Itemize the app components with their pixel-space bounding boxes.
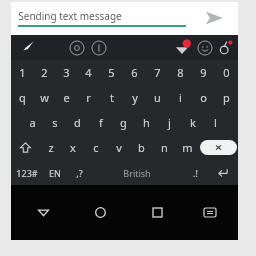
- staticText: British: [123, 167, 151, 179]
- button[interactable]: m: [176, 135, 199, 160]
- staticText: q: [19, 90, 26, 105]
- staticText: g: [120, 115, 127, 130]
- staticText: y: [132, 90, 138, 105]
- staticText: x: [70, 140, 76, 155]
- button[interactable]: r: [77, 85, 100, 110]
- staticText: 9: [200, 65, 207, 80]
- button[interactable]: x: [62, 135, 84, 160]
- button[interactable]: h: [135, 110, 158, 135]
- button[interactable]: c: [84, 135, 107, 160]
- button[interactable]: 8: [169, 60, 192, 85]
- button[interactable]: q: [11, 85, 33, 110]
- button[interactable]: w: [33, 85, 55, 110]
- staticText: v: [116, 140, 122, 155]
- button[interactable]: 5: [100, 60, 123, 85]
- button[interactable]: 0: [215, 60, 238, 85]
- button[interactable]: Clipboard: [91, 40, 107, 56]
- button[interactable]: v: [107, 135, 130, 160]
- button[interactable]: f: [89, 110, 112, 135]
- button[interactable]: 2: [33, 60, 55, 85]
- button[interactable]: j: [158, 110, 181, 135]
- staticText: 5: [108, 65, 115, 80]
- staticText: a: [29, 115, 36, 130]
- button[interactable]: ,?: [67, 160, 91, 185]
- button[interactable]: Home: [72, 185, 129, 240]
- button[interactable]: s: [43, 110, 66, 135]
- staticText: h: [143, 115, 150, 130]
- button[interactable]: k: [181, 110, 204, 135]
- button[interactable]: EN: [43, 160, 67, 185]
- staticText: Sending text message: [18, 9, 122, 23]
- staticText: 123#: [16, 167, 38, 179]
- button[interactable]: Keyboard brand: [18, 38, 48, 57]
- button[interactable]: Back: [15, 185, 72, 240]
- button[interactable]: z: [40, 135, 62, 160]
- staticText: n: [161, 140, 168, 155]
- staticText: 2: [41, 65, 48, 80]
- button[interactable]: 1: [11, 60, 33, 85]
- staticText: o: [200, 90, 207, 105]
- staticText: b: [138, 140, 145, 155]
- button[interactable]: Switch keyboard: [186, 185, 234, 240]
- button[interactable]: Shift: [11, 135, 40, 160]
- staticText: w: [40, 90, 49, 105]
- staticText: 4: [85, 65, 92, 80]
- staticText: e: [63, 90, 70, 105]
- staticText: d: [74, 115, 81, 130]
- button[interactable]: Emoji: [197, 40, 213, 56]
- button[interactable]: Settings: [217, 40, 233, 56]
- button[interactable]: t: [100, 85, 123, 110]
- staticText: ,?: [76, 167, 83, 179]
- button[interactable]: i: [169, 85, 192, 110]
- button[interactable]: b: [130, 135, 153, 160]
- button[interactable]: d: [66, 110, 89, 135]
- button[interactable]: 7: [146, 60, 169, 85]
- staticText: 1: [19, 65, 26, 80]
- staticText: 8: [177, 65, 184, 80]
- button[interactable]: u: [146, 85, 169, 110]
- staticText: m: [182, 140, 193, 155]
- staticText: f: [99, 115, 103, 130]
- button[interactable]: 6: [123, 60, 146, 85]
- button[interactable]: 9: [192, 60, 215, 85]
- staticText: c: [93, 140, 99, 155]
- staticText: EN: [49, 167, 61, 179]
- button[interactable]: Enter: [207, 160, 238, 185]
- staticText: j: [168, 115, 171, 130]
- staticText: 6: [131, 65, 138, 80]
- staticText: .!: [193, 167, 198, 179]
- button[interactable]: y: [123, 85, 146, 110]
- button[interactable]: l: [204, 110, 227, 135]
- button[interactable]: Recents: [129, 185, 186, 240]
- staticText: 0: [223, 65, 230, 80]
- button[interactable]: Backspace: [200, 140, 237, 155]
- button[interactable]: 4: [77, 60, 100, 85]
- button[interactable]: p: [215, 85, 238, 110]
- button[interactable]: e: [55, 85, 77, 110]
- staticText: i: [179, 90, 182, 105]
- button[interactable]: n: [153, 135, 176, 160]
- button[interactable]: Voice input: [69, 40, 85, 56]
- button[interactable]: Send: [197, 5, 231, 31]
- staticText: u: [154, 90, 161, 105]
- staticText: 7: [154, 65, 161, 80]
- staticText: z: [48, 140, 54, 155]
- button[interactable]: a: [21, 110, 43, 135]
- button[interactable]: 3: [55, 60, 77, 85]
- staticText: r: [86, 90, 91, 105]
- staticText: s: [52, 115, 58, 130]
- staticText: k: [190, 115, 196, 130]
- staticText: p: [223, 90, 230, 105]
- button[interactable]: .!: [183, 160, 207, 185]
- button[interactable]: British: [91, 160, 183, 185]
- button[interactable]: 123#: [11, 160, 43, 185]
- staticText: 3: [63, 65, 70, 80]
- staticText: t: [110, 90, 114, 105]
- button[interactable]: g: [112, 110, 135, 135]
- button[interactable]: Sync: [174, 40, 190, 56]
- button[interactable]: o: [192, 85, 215, 110]
- staticText: l: [214, 115, 217, 130]
